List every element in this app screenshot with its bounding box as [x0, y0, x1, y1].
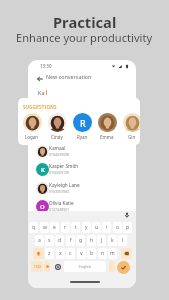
- button[interactable]: d: [55, 235, 64, 246]
- button[interactable]: n: [98, 248, 107, 259]
- button[interactable]: i: [102, 222, 111, 233]
- button[interactable]: Language: [55, 264, 61, 270]
- staticText: 0156509128: [49, 170, 70, 175]
- staticText: v: [80, 250, 83, 257]
- staticText: j: [101, 237, 103, 244]
- staticText: English: [79, 264, 91, 269]
- staticText: n: [101, 250, 105, 257]
- button[interactable]: Send: [117, 261, 130, 274]
- button[interactable]: z: [45, 248, 54, 259]
- button[interactable]: v: [77, 248, 86, 259]
- button[interactable]: s: [45, 235, 54, 246]
- button[interactable]: Voice input: [124, 212, 130, 218]
- button[interactable]: f: [66, 235, 75, 246]
- staticText: u: [95, 224, 99, 231]
- staticText: o: [116, 224, 120, 231]
- staticText: 0163057083: [49, 189, 70, 194]
- button[interactable]: Cindy: [46, 113, 68, 140]
- button[interactable]: y: [82, 222, 91, 233]
- staticText: 0118899001: [49, 226, 70, 231]
- staticText: Kamaal: [49, 145, 66, 151]
- button[interactable]: a: [35, 235, 44, 246]
- button[interactable]: c: [66, 248, 75, 259]
- button[interactable]: ?123: [31, 261, 43, 272]
- staticText: g: [79, 237, 83, 244]
- button[interactable]: Emoji: [44, 261, 50, 272]
- staticText: SUGGESTIONS: [23, 104, 57, 110]
- button[interactable]: Shift: [33, 248, 44, 259]
- staticText: Kayleigh Lane: [49, 182, 80, 188]
- staticText: .: [111, 264, 113, 269]
- button[interactable]: P: [28, 216, 136, 234]
- staticText: 0137448901: [49, 207, 70, 212]
- staticText: Ryan: [77, 134, 88, 140]
- staticText: O: [40, 203, 45, 211]
- staticText: ?123: [34, 265, 41, 269]
- staticText: x: [59, 250, 62, 257]
- staticText: Ka: [38, 89, 45, 96]
- button[interactable]: Gin: [121, 113, 140, 140]
- staticText: s: [48, 237, 51, 244]
- staticText: e: [53, 224, 56, 231]
- staticText: K: [41, 166, 45, 174]
- staticText: r: [64, 224, 67, 231]
- button[interactable]: e: [50, 222, 59, 233]
- button[interactable]: K: [28, 160, 136, 178]
- button[interactable]: o: [113, 222, 122, 233]
- staticText: Gin: [128, 134, 136, 140]
- button[interactable]: l: [118, 235, 127, 246]
- staticText: 13:30: [40, 63, 52, 69]
- button[interactable]: Kayleigh Lane: [28, 179, 136, 197]
- staticText: Emma: [100, 134, 114, 140]
- staticText: 0104039098: [49, 152, 70, 157]
- staticText: Patrick: [49, 219, 65, 225]
- staticText: w: [43, 224, 47, 231]
- button[interactable]: r: [61, 222, 70, 233]
- button[interactable]: m: [108, 248, 117, 259]
- staticText: f: [70, 237, 72, 244]
- button[interactable]: Emma: [96, 113, 118, 140]
- button[interactable]: g: [76, 235, 85, 246]
- staticText: Cindy: [51, 134, 63, 140]
- staticText: P: [41, 222, 45, 230]
- button[interactable]: Logan: [21, 113, 43, 140]
- button[interactable]: x: [56, 248, 65, 259]
- staticText: Practical: [53, 12, 117, 32]
- button[interactable]: t: [71, 222, 80, 233]
- button[interactable]: q: [29, 222, 38, 233]
- staticText: i: [106, 224, 108, 231]
- staticText: l: [122, 237, 124, 244]
- staticText: z: [48, 250, 51, 257]
- staticText: d: [58, 237, 62, 244]
- button[interactable]: j: [97, 235, 106, 246]
- button[interactable]: h: [87, 235, 96, 246]
- button[interactable]: Period: [109, 261, 115, 272]
- staticText: m: [110, 250, 115, 257]
- button[interactable]: b: [87, 248, 96, 259]
- staticText: Enhance your productivity: [16, 30, 153, 45]
- button[interactable]: English: [64, 261, 106, 272]
- staticText: Olivia Katie: [49, 200, 74, 206]
- button[interactable]: Back: [35, 74, 45, 84]
- staticText: p: [126, 224, 130, 231]
- button[interactable]: p: [123, 222, 132, 233]
- staticText: Kasper Smith: [49, 163, 79, 169]
- staticText: c: [69, 250, 72, 257]
- staticText: b: [90, 250, 94, 257]
- staticText: R: [80, 117, 86, 129]
- button[interactable]: R: [71, 113, 93, 140]
- staticText: Logan: [25, 134, 39, 140]
- staticText: q: [32, 224, 36, 231]
- staticText: t: [75, 224, 77, 231]
- button[interactable]: w: [40, 222, 49, 233]
- button[interactable]: Backspace: [121, 248, 132, 259]
- button[interactable]: k: [108, 235, 117, 246]
- staticText: New conversation: [46, 73, 92, 80]
- button[interactable]: u: [92, 222, 101, 233]
- button[interactable]: Kamaal: [28, 142, 136, 160]
- staticText: y: [85, 224, 88, 231]
- button[interactable]: O: [28, 197, 136, 215]
- staticText: a: [38, 237, 41, 244]
- staticText: k: [111, 237, 114, 244]
- staticText: h: [90, 237, 94, 244]
